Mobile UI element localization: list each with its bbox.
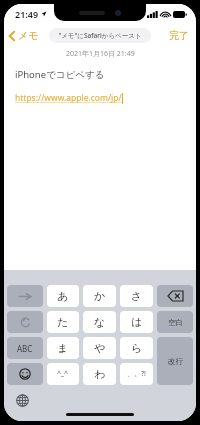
staticText: か: [94, 289, 106, 303]
button[interactable]: さ: [120, 285, 153, 307]
button[interactable]: Emoji: [7, 363, 43, 385]
staticText: わ: [94, 367, 106, 381]
staticText: ら: [131, 341, 143, 355]
button[interactable]: ^_^: [47, 363, 79, 385]
staticText: iPhoneでコピペする: [15, 68, 105, 81]
staticText: 21:49: [15, 8, 39, 20]
button[interactable]: わ: [83, 363, 116, 385]
staticText: 、。?!: [127, 369, 146, 379]
staticText: や: [94, 341, 106, 355]
button[interactable]: ら: [120, 337, 153, 359]
staticText: 2021年1月16日 21:49: [66, 49, 135, 59]
staticText: ABC: [17, 343, 33, 354]
button[interactable]: メモ: [4, 26, 45, 45]
button[interactable]: あ: [47, 285, 79, 307]
button[interactable]: な: [83, 311, 116, 333]
staticText: あ: [57, 289, 69, 303]
button[interactable]: Change keyboard: [14, 392, 30, 408]
staticText: メモ: [18, 29, 39, 42]
button[interactable]: ABC keyboard: [7, 337, 43, 359]
staticText: ^_^: [57, 369, 69, 379]
staticText: な: [94, 315, 106, 329]
staticText: は: [131, 315, 143, 329]
button[interactable]: 完了: [162, 26, 196, 45]
button[interactable]: Return: [157, 337, 193, 385]
staticText: さ: [131, 289, 143, 303]
button[interactable]: Undo: [7, 311, 43, 333]
staticText: 完了: [169, 29, 189, 42]
button[interactable]: https://www.apple.com/jp/: [15, 92, 122, 104]
button[interactable]: や: [83, 337, 116, 359]
staticText: "メモ"にSafariからペースト: [58, 31, 142, 40]
staticText: 空白: [168, 318, 183, 327]
button[interactable]: は: [120, 311, 153, 333]
button[interactable]: ま: [47, 337, 79, 359]
button[interactable]: た: [47, 311, 79, 333]
button[interactable]: Space: [157, 311, 193, 333]
staticText: 改行: [168, 357, 183, 366]
button[interactable]: Delete: [157, 285, 193, 307]
staticText: ま: [57, 341, 69, 355]
button[interactable]: か: [83, 285, 116, 307]
staticText: た: [57, 315, 69, 329]
button[interactable]: "メモ"にSafariからペースト: [49, 28, 151, 43]
button[interactable]: 、。?!: [120, 363, 153, 385]
button[interactable]: Next candidate: [7, 285, 43, 307]
